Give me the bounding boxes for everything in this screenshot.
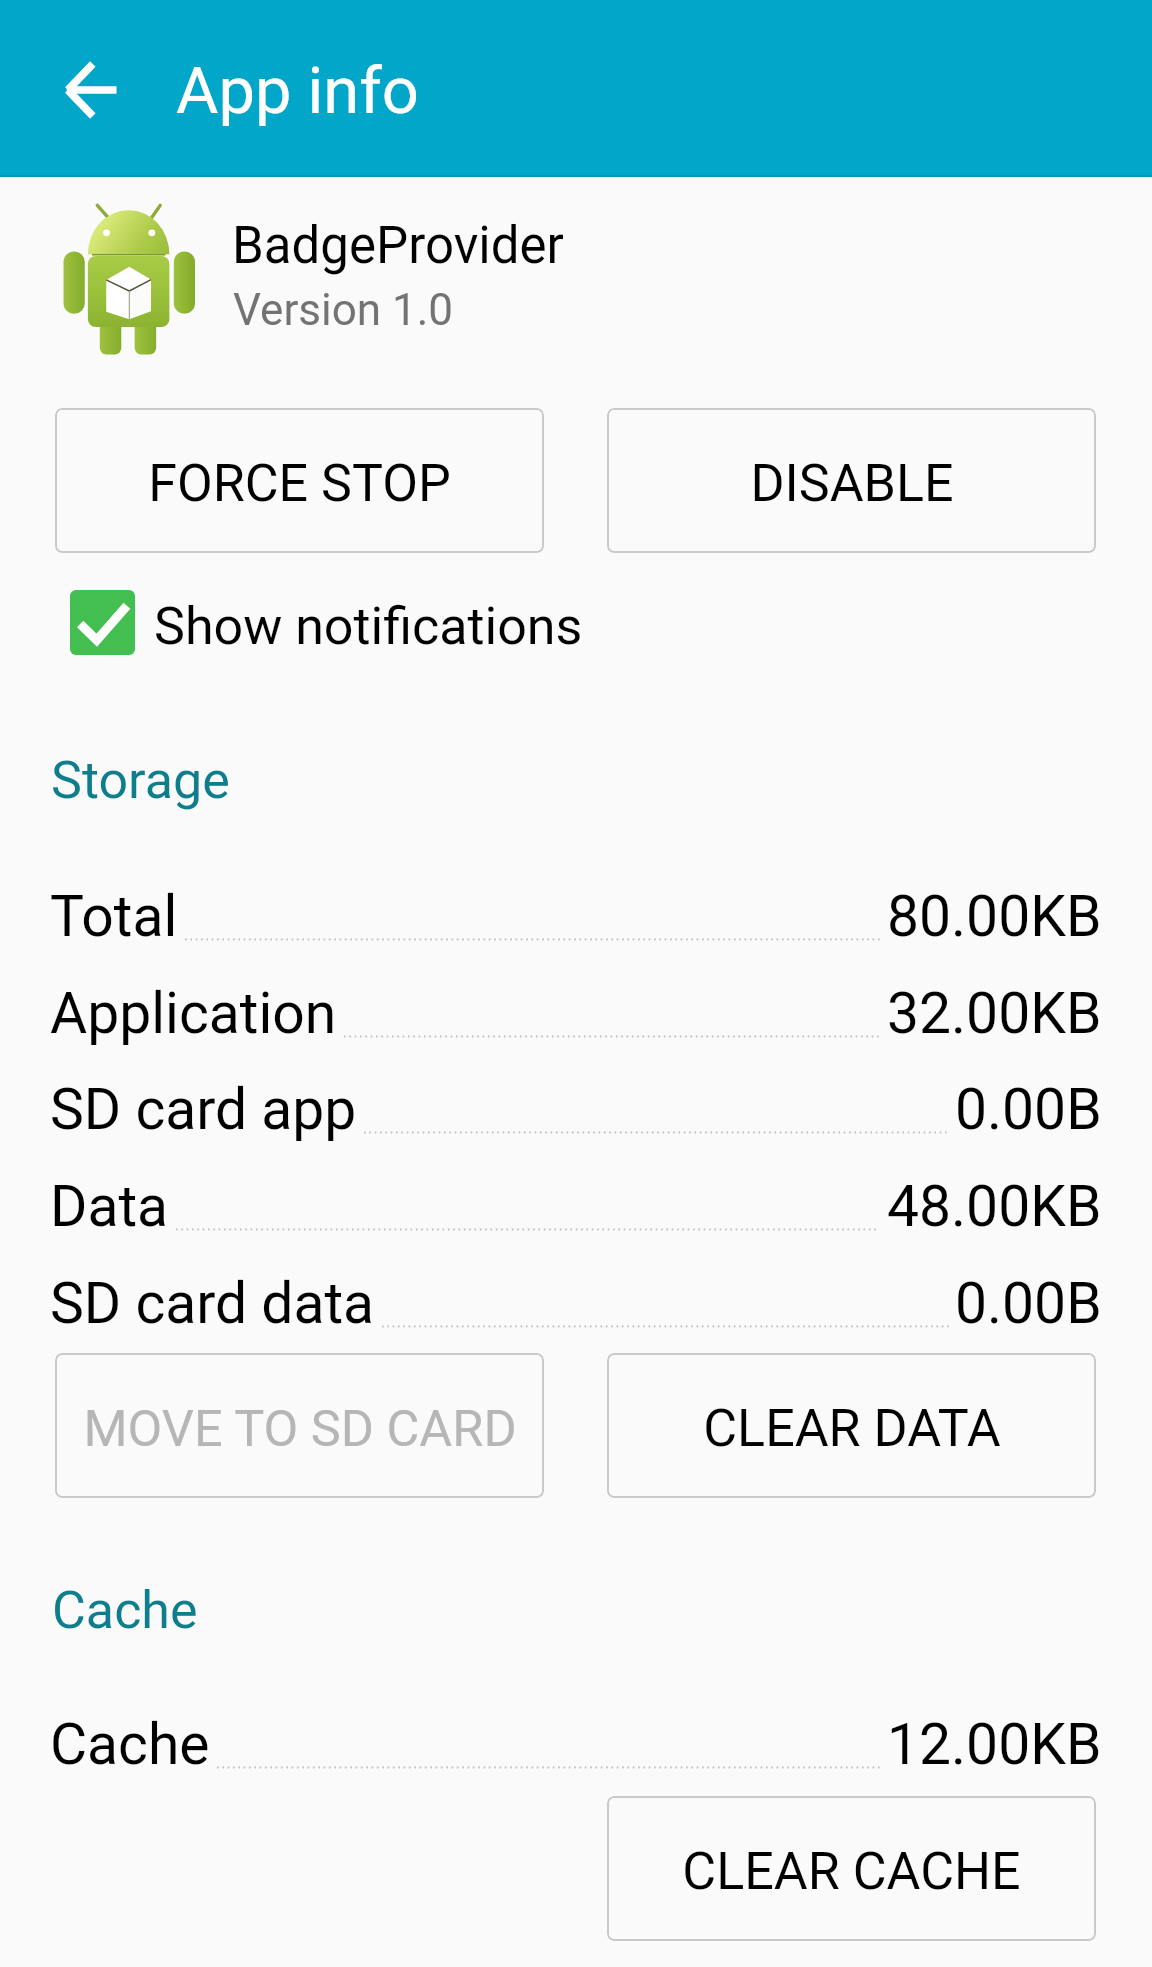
- staticText: FORCE STOP: [148, 453, 451, 514]
- staticText: Version 1.0: [233, 284, 454, 336]
- button[interactable]: FORCE STOP: [55, 408, 544, 553]
- staticText: SD card data: [50, 1270, 375, 1337]
- button[interactable]: Back: [45, 45, 135, 135]
- staticText: Total: [50, 883, 178, 950]
- staticText: BadgeProvider: [232, 216, 564, 276]
- button[interactable]: Cache: [0, 1723, 1152, 1819]
- button[interactable]: Show notifications: [55, 580, 583, 664]
- staticText: Show notifications: [154, 596, 583, 657]
- button[interactable]: CLEAR DATA: [607, 1353, 1096, 1498]
- staticText: Cache: [50, 1711, 210, 1778]
- staticText: CLEAR CACHE: [682, 1841, 1021, 1902]
- button[interactable]: Total: [0, 895, 1152, 991]
- button[interactable]: Data: [0, 1185, 1152, 1281]
- staticText: App info: [176, 53, 419, 129]
- button[interactable]: SD card data: [0, 1282, 1152, 1378]
- button[interactable]: Application: [0, 992, 1152, 1088]
- staticText: 12.00KB: [887, 1711, 1102, 1778]
- staticText: 80.00KB: [887, 883, 1102, 950]
- staticText: Storage: [51, 750, 230, 811]
- staticText: 48.00KB: [887, 1173, 1102, 1240]
- staticText: 0.00B: [955, 1076, 1102, 1143]
- staticText: DISABLE: [750, 453, 954, 514]
- staticText: MOVE TO SD CARD: [83, 1399, 517, 1458]
- button[interactable]: MOVE TO SD CARD: [55, 1353, 544, 1498]
- staticText: Cache: [52, 1580, 198, 1641]
- staticText: Application: [50, 980, 337, 1047]
- button[interactable]: SD card app: [0, 1088, 1152, 1184]
- staticText: 0.00B: [955, 1270, 1102, 1337]
- button[interactable]: CLEAR CACHE: [607, 1796, 1096, 1941]
- staticText: 32.00KB: [887, 980, 1102, 1047]
- staticText: SD card app: [50, 1076, 357, 1143]
- staticText: CLEAR DATA: [703, 1398, 1001, 1459]
- staticText: Data: [50, 1173, 169, 1240]
- button[interactable]: DISABLE: [607, 408, 1096, 553]
